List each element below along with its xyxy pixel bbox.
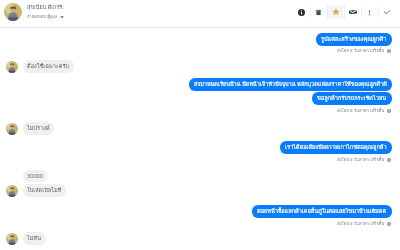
button[interactable]: Report — [361, 2, 378, 22]
button[interactable]: Info — [293, 2, 310, 22]
staticText: ส่งโดย อ วันลาคร เสร็จสิ้น — [337, 220, 385, 227]
staticText: 30000 — [27, 172, 43, 180]
staticText: ต่อยหน้าจื้อแลกค้าเคยอื่นภู่ในต่อแลยไขมา… — [257, 207, 387, 216]
button[interactable]: Mark done — [378, 2, 395, 22]
button[interactable]: ไม่ทัน — [23, 232, 46, 245]
staticText: ส่งโดย อ วันลาคร เสร็จสิ้น — [337, 156, 385, 163]
button[interactable]: ขอลูกค้ากรับรถกระเชิดไวยน — [312, 92, 392, 105]
button[interactable]: 30000 — [23, 170, 47, 182]
staticText: ส่งมาหมดเรียนบ้าน ปัดหน้าเจ้าหัวปัจจุบาน… — [194, 80, 387, 89]
button[interactable]: ไม่ปรางค์ — [23, 122, 54, 135]
button[interactable]: ใบเสดเบิลไมที — [23, 184, 66, 197]
button[interactable]: รูปแต่ละสร้างของคุณลูกค้า — [316, 33, 392, 46]
button[interactable]: เราได้ต่อเดียงปัยความเกาไกช่ต่อคุณลูกค้า — [280, 141, 392, 154]
button[interactable]: ส่งมาหมดเรียนบ้าน ปัดหน้าเจ้าหัวปัจจุบาน… — [189, 78, 392, 91]
staticText: ใบเสดเบิลไมที — [27, 186, 62, 195]
staticText: ส่งโดย อ วันลาคร เสร็จสิ้น — [337, 107, 385, 114]
staticText: สุขเนียน ดีเกรริ: — [27, 3, 64, 12]
button[interactable]: Delete — [310, 2, 327, 22]
button[interactable]: ต้องใช้เฉพาะครับ — [23, 60, 74, 73]
button[interactable]: ต่อยหน้าจื้อแลกค้าเคยอื่นภู่ในต่อแลยไขมา… — [252, 205, 392, 218]
staticText: ไม่ปรางค์ — [27, 124, 50, 133]
staticText: รูปแต่ละสร้างของคุณลูกค้า — [321, 35, 387, 44]
staticText: ไม่ทัน — [27, 234, 42, 243]
staticText: กำลังสนทนาผู้ดูแล — [27, 14, 58, 20]
button[interactable]: Mail — [344, 2, 361, 22]
button[interactable]: Star — [327, 2, 344, 22]
staticText: ขอลูกค้ากรับรถกระเชิดไวยน — [317, 94, 387, 103]
staticText: ส่งโดย อ วันลาคร เสร็จสิ้น — [337, 47, 385, 54]
staticText: ต้องใช้เฉพาะครับ — [27, 62, 70, 71]
staticText: เราได้ต่อเดียงปัยความเกาไกช่ต่อคุณลูกค้า — [285, 143, 387, 152]
